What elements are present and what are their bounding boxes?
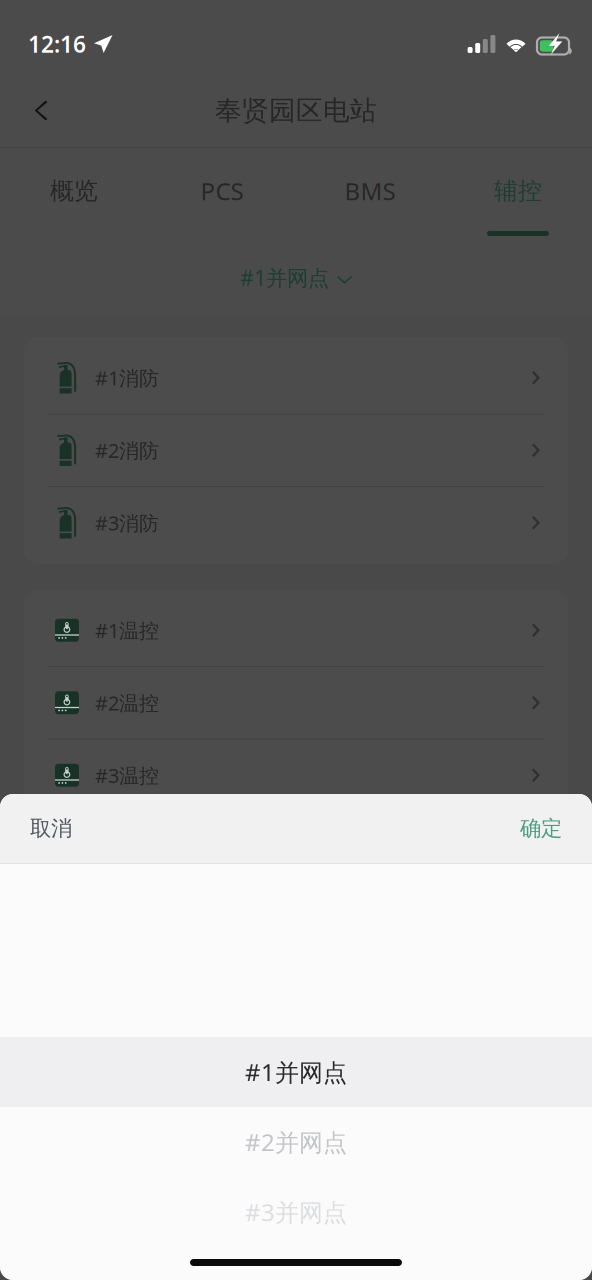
staticText: BMS xyxy=(344,175,395,207)
staticText: 概览 xyxy=(50,176,98,206)
button[interactable]: #1并网点 xyxy=(0,240,592,315)
staticText: #2温控 xyxy=(95,689,159,716)
button[interactable]: #2消防 xyxy=(24,414,568,486)
button[interactable]: PCS xyxy=(148,148,296,240)
button[interactable]: #3温控 xyxy=(24,739,568,811)
staticText: 12:16 xyxy=(28,29,86,59)
staticText: #1并网点 xyxy=(240,263,329,292)
button[interactable]: 取消 xyxy=(0,794,126,862)
staticText: 取消 xyxy=(30,815,72,842)
staticText: 确定 xyxy=(520,815,562,842)
button[interactable]: #3消防 xyxy=(24,487,568,558)
staticText: #2并网点 xyxy=(245,1126,347,1158)
button[interactable]: 确定 xyxy=(466,794,592,862)
staticText: #1温控 xyxy=(95,617,159,644)
button[interactable]: 概览 xyxy=(0,148,148,240)
staticText: #3并网点 xyxy=(245,1196,347,1228)
button[interactable]: Back xyxy=(14,82,68,138)
staticText: #3温控 xyxy=(95,762,159,789)
staticText: #1消防 xyxy=(95,364,159,391)
staticText: #2消防 xyxy=(95,437,159,464)
staticText: PCS xyxy=(200,175,243,207)
staticText: 奉贤园区电站 xyxy=(215,94,377,127)
button[interactable]: #1消防 xyxy=(24,342,568,413)
staticText: 辅控 xyxy=(494,176,542,206)
button[interactable]: BMS xyxy=(296,148,444,240)
button[interactable]: 辅控 xyxy=(444,148,592,240)
button[interactable]: #1温控 xyxy=(24,594,568,666)
staticText: #3消防 xyxy=(95,509,159,536)
button[interactable]: #2温控 xyxy=(24,667,568,738)
staticText: #1并网点 xyxy=(245,1056,347,1088)
